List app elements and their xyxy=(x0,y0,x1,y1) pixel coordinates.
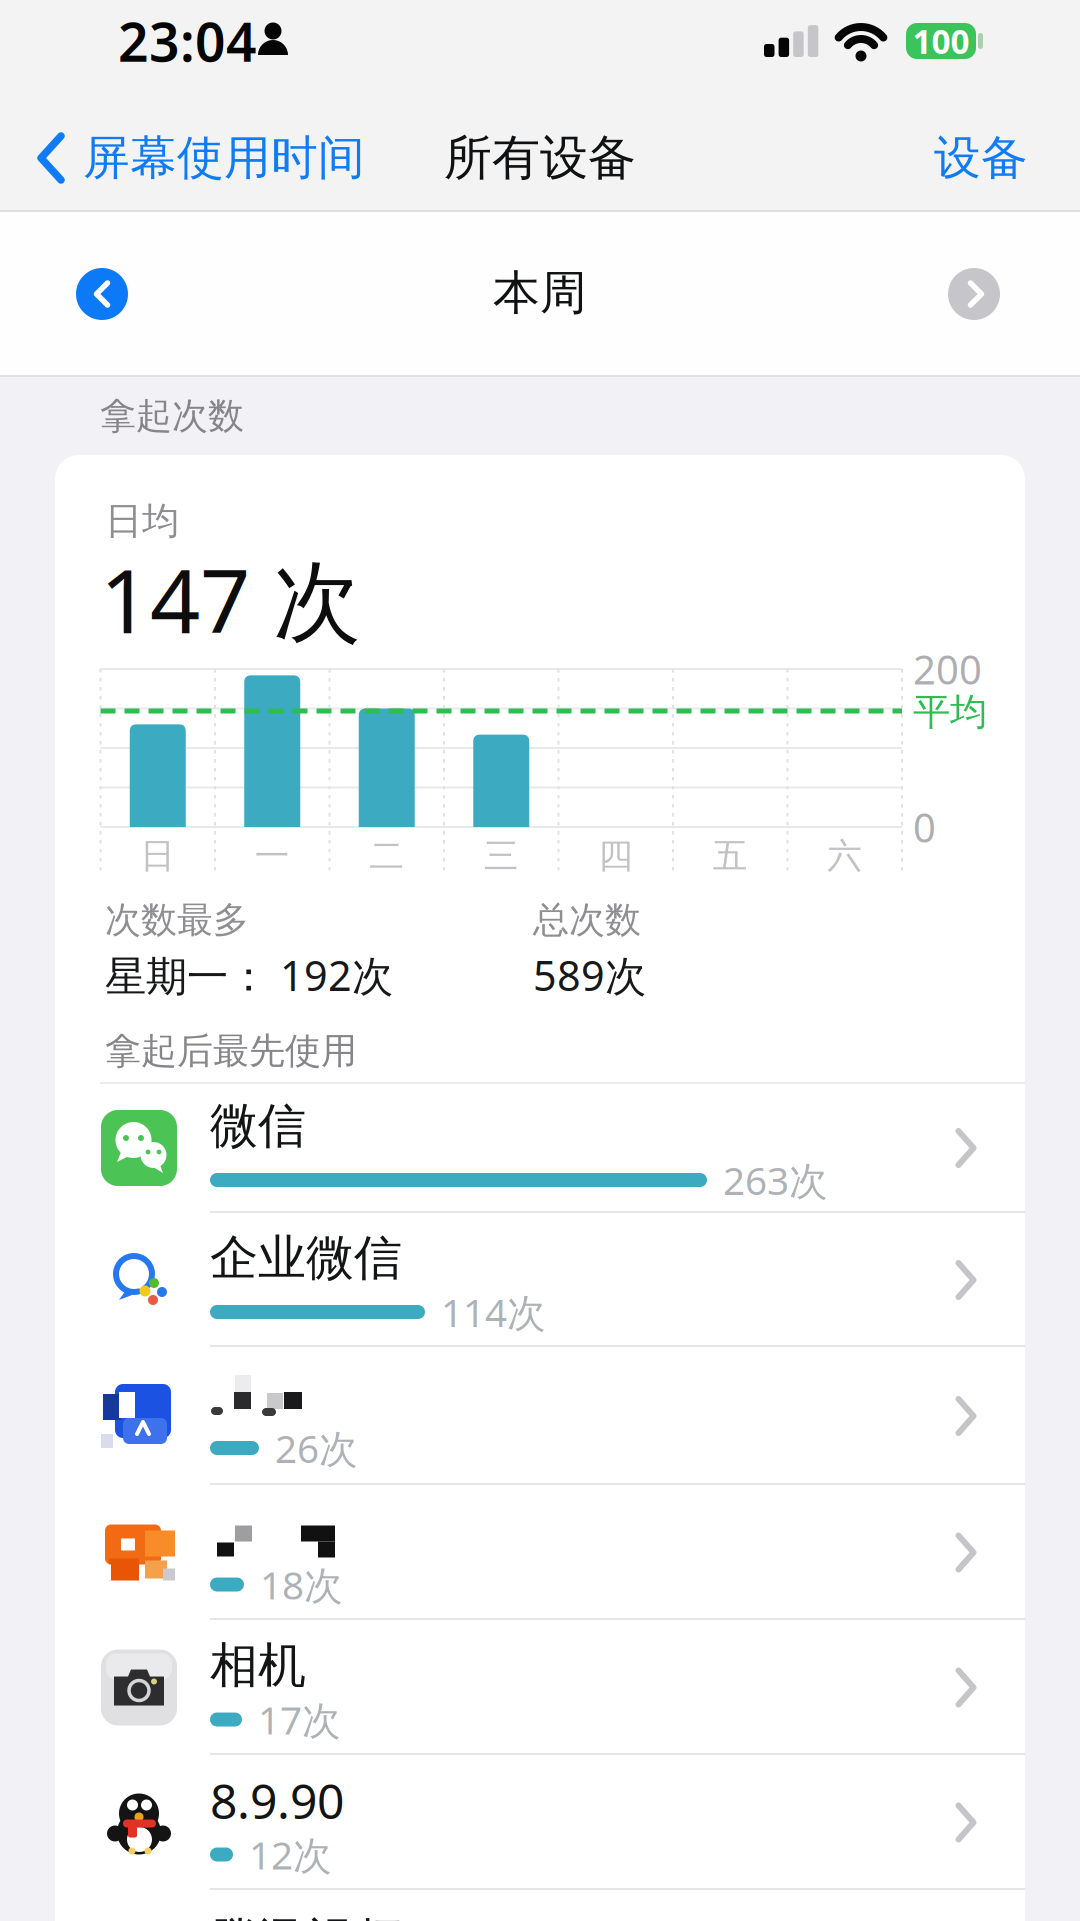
staticText: 26次 xyxy=(275,1422,358,1474)
staticText: 六 xyxy=(827,835,862,877)
staticText: 四 xyxy=(598,835,633,877)
staticText: 日均 xyxy=(105,498,179,544)
staticText: 23:04 xyxy=(118,6,257,76)
staticText: 二 xyxy=(369,835,404,877)
staticText: 100 xyxy=(912,19,969,63)
staticText: 12次 xyxy=(249,1829,332,1880)
staticText: 相机 xyxy=(210,1636,306,1695)
staticText: 次数最多 xyxy=(105,898,249,942)
staticText: 0 xyxy=(913,800,936,853)
staticText: 三 xyxy=(484,835,519,877)
staticText: 147 次 xyxy=(100,541,361,657)
staticText: 18次 xyxy=(260,1559,343,1610)
staticText: 17次 xyxy=(258,1694,341,1745)
button[interactable]: 上一周 xyxy=(72,264,132,324)
staticText: 总次数 xyxy=(533,898,641,942)
staticText: 设备 xyxy=(934,129,1028,187)
button[interactable]: 应用 18次 xyxy=(55,1485,1025,1620)
staticText: 屏幕使用时间 xyxy=(83,129,365,187)
button[interactable]: 微信 xyxy=(55,1083,1025,1213)
staticText: 一 xyxy=(255,835,290,877)
staticText: 腾讯视频 xyxy=(210,1911,402,1921)
button[interactable]: 下一周 xyxy=(944,264,1004,324)
staticText: 企业微信 xyxy=(210,1228,402,1287)
staticText: 微信 xyxy=(210,1096,306,1155)
button[interactable]: 屏幕使用时间 xyxy=(30,98,500,218)
staticText: 114次 xyxy=(441,1286,546,1338)
button[interactable]: 应用 26次 xyxy=(55,1347,1025,1485)
staticText: 五 xyxy=(713,835,748,877)
staticText: 拿起后最先使用 xyxy=(105,1029,357,1073)
staticText: 589次 xyxy=(533,948,646,1002)
staticText: 本周 xyxy=(493,264,587,322)
button[interactable]: 8.9.90 xyxy=(55,1755,1025,1890)
button[interactable]: 企业微信 xyxy=(55,1213,1025,1347)
staticText: 所有设备 xyxy=(444,128,636,187)
button[interactable]: 相机 xyxy=(55,1620,1025,1755)
staticText: 日 xyxy=(140,835,175,877)
staticText: 星期一： 192次 xyxy=(105,948,393,1002)
staticText: 263次 xyxy=(723,1154,828,1206)
staticText: 200 xyxy=(913,642,982,695)
staticText: 8.9.90 xyxy=(210,1769,344,1832)
staticText: 平均 xyxy=(913,689,987,735)
staticText: 拿起次数 xyxy=(100,394,244,438)
button[interactable]: 设备 xyxy=(868,103,1028,213)
